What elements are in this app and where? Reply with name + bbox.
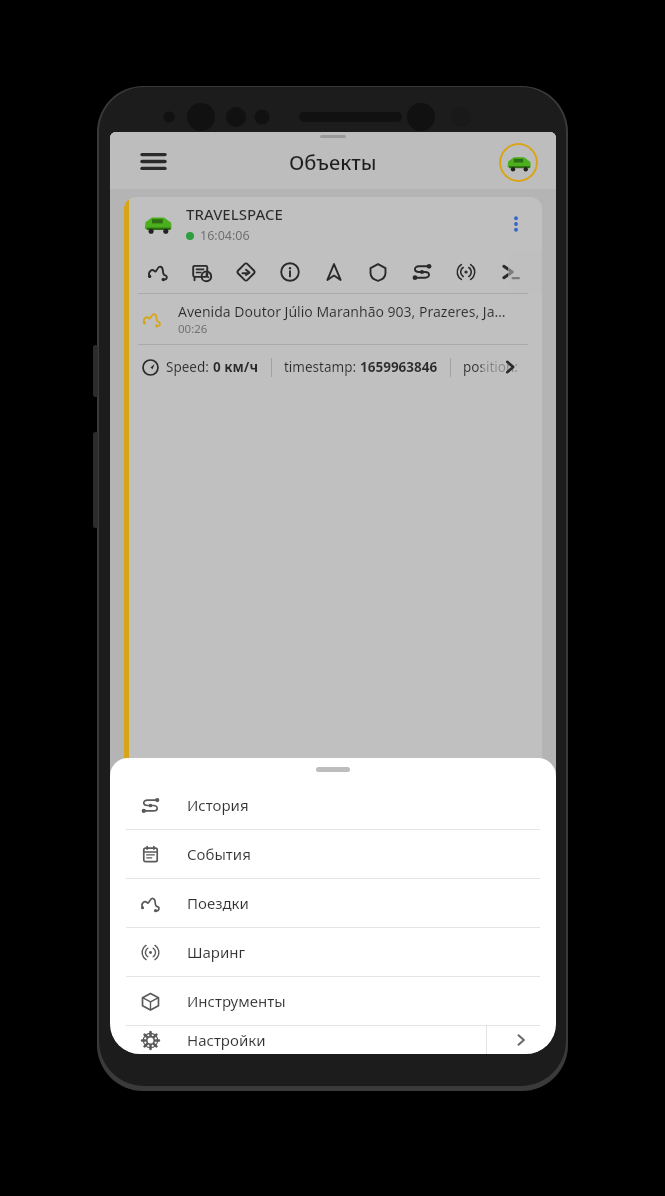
button[interactable]: TRIP (136, 251, 180, 293)
button[interactable]: Current vehicle (499, 143, 538, 182)
button[interactable]: TRAVELSPACE (124, 197, 542, 1054)
staticText: Поездки (187, 893, 249, 913)
staticText: Шаринг (187, 942, 246, 962)
button[interactable]: TERMINAL (488, 251, 532, 293)
staticText: 00:26 (178, 321, 208, 337)
button[interactable]: Поездки (110, 879, 556, 927)
staticText: События (187, 844, 251, 864)
staticText: position: (463, 358, 522, 376)
staticText: История (187, 795, 249, 815)
button[interactable]: Шаринг (110, 928, 556, 976)
button[interactable]: REPORT (180, 251, 224, 293)
button[interactable]: ARROW (312, 251, 356, 293)
staticText: Объекты (289, 149, 377, 176)
staticText: Avenida Doutor Júlio Maranhão 903, Praze… (178, 302, 506, 321)
button[interactable]: События (110, 830, 556, 878)
button[interactable]: SHIELD (356, 251, 400, 293)
button[interactable]: Menu (132, 140, 174, 182)
staticText: Инструменты (187, 991, 286, 1011)
button[interactable]: История (110, 781, 556, 829)
staticText: TRAVELSPACE (186, 204, 283, 224)
staticText: Настройки (187, 1030, 266, 1050)
button[interactable]: Инструменты (110, 977, 556, 1025)
button[interactable]: Avenida Doutor Júlio Maranhão 903, Praze… (142, 294, 528, 344)
button[interactable]: More options (500, 208, 532, 240)
staticText: 0 км/ч (213, 358, 259, 376)
staticText: timestamp: (284, 358, 360, 376)
button[interactable]: INFO (268, 251, 312, 293)
staticText: 1659963846 (360, 358, 438, 376)
button[interactable]: Настройки (110, 1026, 556, 1054)
staticText: 16:04:06 (200, 227, 250, 244)
staticText: Speed: (166, 358, 213, 376)
button[interactable]: ROUTE (400, 251, 444, 293)
button[interactable]: NAVSIGN (224, 251, 268, 293)
button[interactable]: CAST (444, 251, 488, 293)
